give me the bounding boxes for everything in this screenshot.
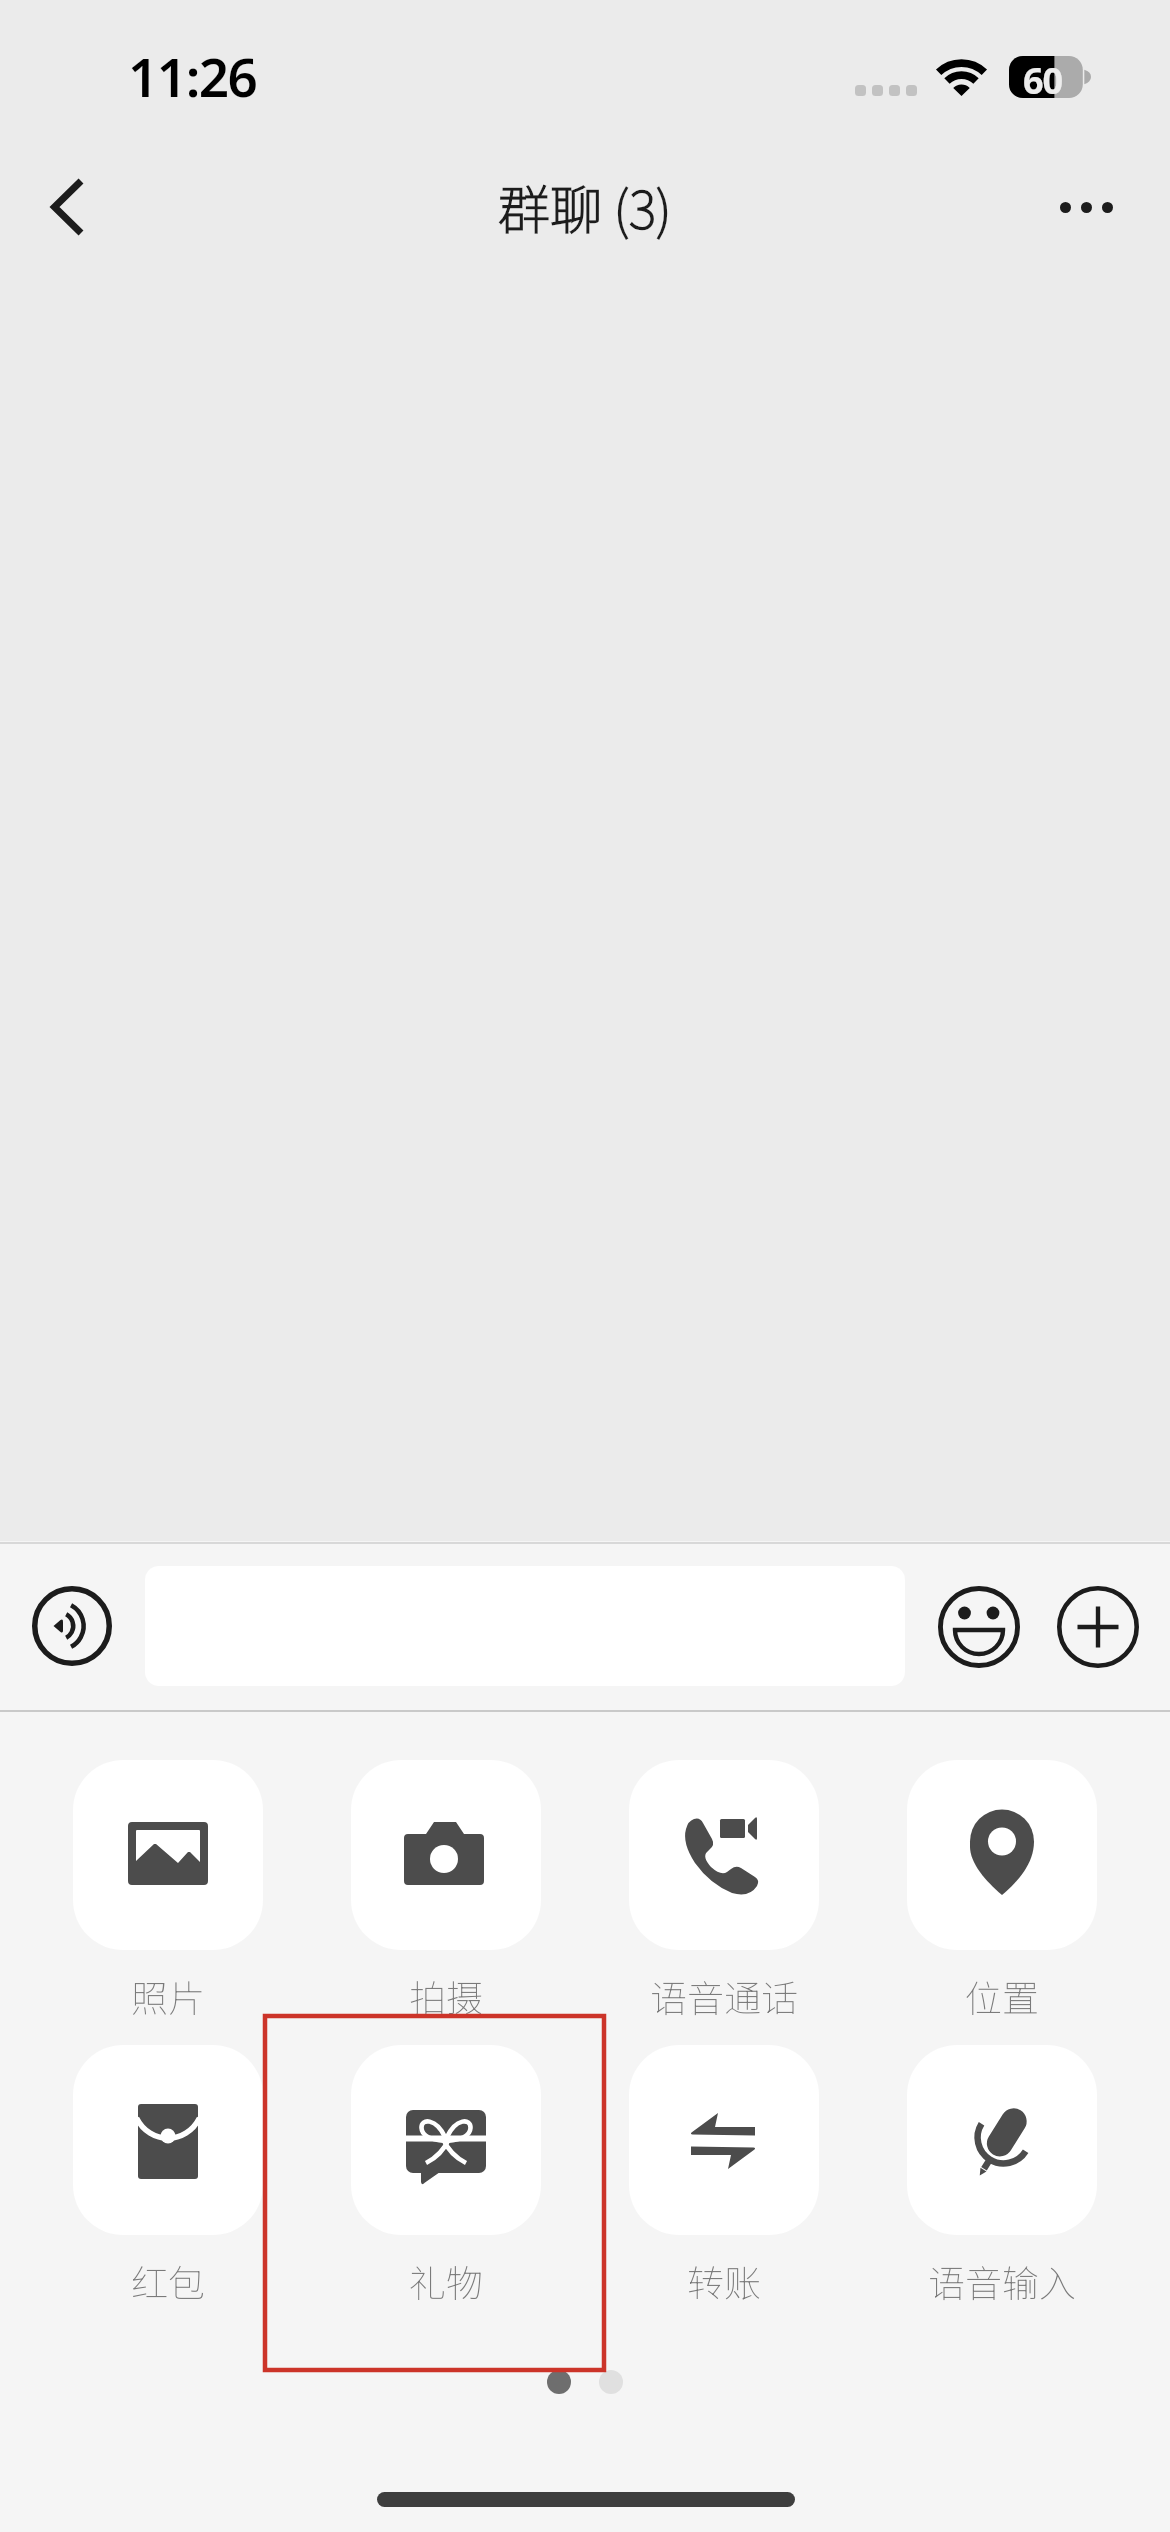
button[interactable]: 拍摄	[307, 1760, 585, 2040]
staticText: 60	[1023, 56, 1063, 98]
staticText: 礼物	[409, 2254, 483, 2308]
button[interactable]: 语音输入	[863, 2045, 1141, 2325]
button[interactable]: 照片	[29, 1760, 307, 2040]
staticText: 语音通话	[650, 1969, 798, 2023]
button[interactable]: Back	[6, 147, 126, 267]
staticText: 群聊 (3)	[498, 169, 672, 244]
staticText: 11:26	[128, 40, 257, 112]
button[interactable]: Voice message	[28, 1582, 116, 1670]
button[interactable]: 转账	[585, 2045, 863, 2325]
staticText: 照片	[131, 1969, 205, 2023]
button[interactable]: Emoji	[936, 1584, 1022, 1670]
button[interactable]: 红包	[29, 2045, 307, 2325]
staticText: 红包	[131, 2254, 205, 2308]
button[interactable]: More	[1055, 1584, 1141, 1670]
staticText: 位置	[965, 1969, 1039, 2023]
staticText: 转账	[687, 2254, 761, 2308]
button[interactable]: 礼物	[307, 2045, 585, 2325]
staticText: 拍摄	[409, 1969, 483, 2023]
button[interactable]: 位置	[863, 1760, 1141, 2040]
staticText: 语音输入	[928, 2254, 1076, 2308]
button[interactable]: More options	[1026, 147, 1146, 267]
button[interactable]: 语音通话	[585, 1760, 863, 2040]
